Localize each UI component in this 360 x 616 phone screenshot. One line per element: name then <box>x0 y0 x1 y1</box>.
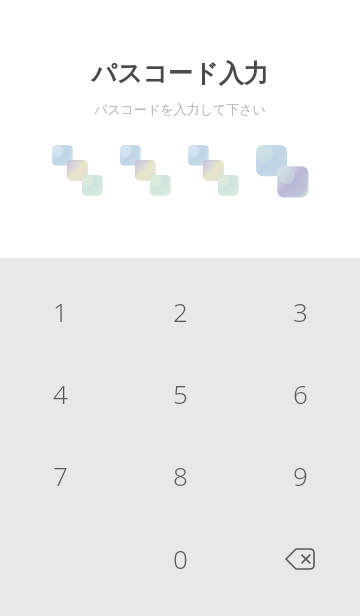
staticText: 0 <box>173 541 188 576</box>
staticText: 6 <box>293 376 308 411</box>
staticText: 1 <box>53 294 68 329</box>
button[interactable]: 4 <box>0 352 120 434</box>
staticText: パスコード入力 <box>91 58 269 89</box>
staticText: 3 <box>293 294 308 329</box>
staticText: 4 <box>53 376 68 411</box>
button[interactable]: 9 <box>240 434 360 517</box>
button[interactable]: 0 <box>120 517 240 600</box>
staticText: 5 <box>173 376 188 411</box>
staticText: 9 <box>293 458 308 493</box>
button[interactable]: 1 <box>0 270 120 352</box>
button[interactable]: 2 <box>120 270 240 352</box>
staticText: 2 <box>173 294 188 329</box>
button[interactable]: 5 <box>120 352 240 434</box>
button[interactable]: 3 <box>240 270 360 352</box>
button[interactable]: 8 <box>120 434 240 517</box>
staticText: パスコードを入力して下さい <box>94 101 266 117</box>
button[interactable]: 6 <box>240 352 360 434</box>
button[interactable]: 7 <box>0 434 120 517</box>
staticText: 7 <box>53 458 68 493</box>
button[interactable]: Backspace <box>240 517 360 600</box>
staticText: 8 <box>173 458 188 493</box>
